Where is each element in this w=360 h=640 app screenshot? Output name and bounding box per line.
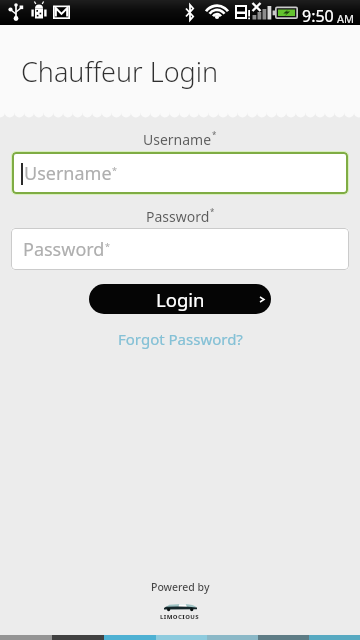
staticText: Password [146,207,210,226]
staticText: Username [24,161,112,186]
staticText: * [112,164,117,176]
staticText: Password [23,237,105,262]
button[interactable]: Login [89,284,271,314]
staticText: Powered by [151,580,210,594]
staticText: 9:50 [302,5,334,27]
staticText: AM [337,11,355,26]
button[interactable]: Username [12,152,348,194]
button[interactable]: Password [11,228,349,270]
staticText: Username [143,130,212,149]
staticText: * [210,206,215,217]
button[interactable]: Forgot Password? [112,328,249,350]
staticText: Forgot Password? [118,329,243,349]
staticText: Login [156,287,205,312]
staticText: Chauffeur Login [21,53,219,90]
staticText: * [212,129,217,140]
staticText: LIMOCIOUS [160,613,200,621]
staticText: * [105,240,110,252]
